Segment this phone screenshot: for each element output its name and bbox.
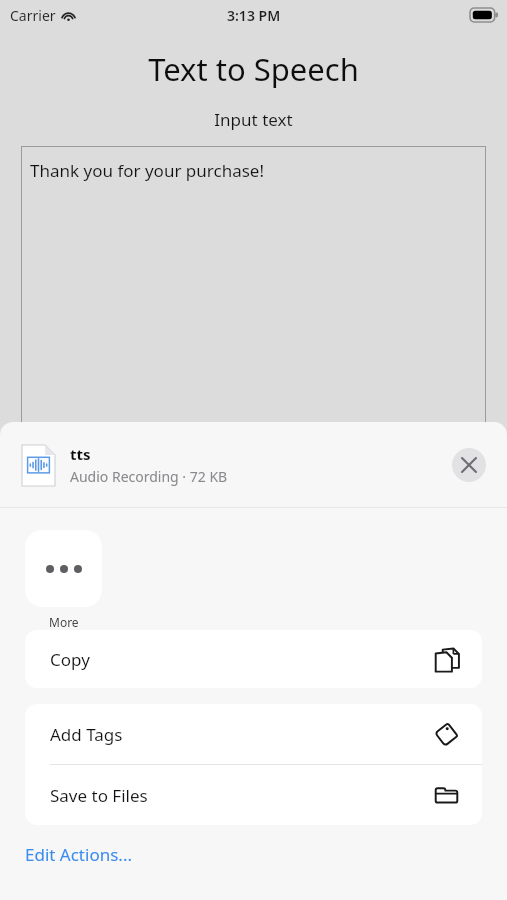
button[interactable]: Save to Files [25,765,482,825]
button[interactable]: More [25,530,102,630]
staticText: Text to Speech [0,48,507,90]
staticText: Carrier [10,6,56,25]
staticText: More [49,614,79,630]
button[interactable]: Thank you for your purchase! [21,146,486,436]
staticText: Audio Recording · 72 KB [70,467,228,486]
button[interactable]: Copy [25,630,482,688]
staticText: Copy [50,648,90,671]
staticText: Edit Actions... [25,843,132,866]
button[interactable]: Close [452,448,486,482]
staticText: Thank you for your purchase! [30,159,265,182]
staticText: Save to Files [50,784,148,807]
button[interactable]: Add Tags [25,704,482,764]
button[interactable]: tts [22,444,437,486]
staticText: Input text [0,108,507,131]
staticText: Add Tags [50,723,123,746]
staticText: tts [70,444,91,464]
staticText: 3:13 PM [227,6,281,25]
button[interactable]: Edit Actions... [25,843,132,866]
